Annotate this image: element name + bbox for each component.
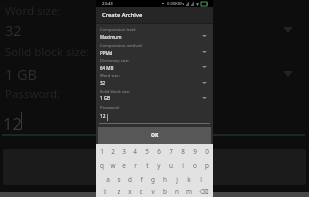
button[interactable]: r bbox=[129, 158, 141, 172]
button[interactable]: 4 bbox=[129, 144, 141, 158]
staticText: Compression method: bbox=[100, 43, 143, 49]
staticText: l bbox=[200, 175, 202, 184]
staticText: r bbox=[134, 161, 137, 170]
button[interactable]: v bbox=[147, 186, 159, 197]
staticText: Solid block size: bbox=[5, 44, 90, 60]
staticText: t bbox=[146, 161, 149, 170]
button[interactable]: m bbox=[183, 186, 195, 197]
staticText: Create Archive bbox=[102, 11, 143, 19]
button[interactable]: q bbox=[96, 158, 107, 172]
staticText: x bbox=[128, 187, 132, 196]
staticText: Compression level: bbox=[100, 27, 137, 33]
staticText: 3 bbox=[122, 147, 126, 156]
button[interactable]: 8 bbox=[177, 144, 189, 158]
button[interactable]: b bbox=[159, 186, 171, 197]
button[interactable]: f bbox=[135, 172, 147, 186]
button[interactable]: u bbox=[165, 158, 177, 172]
button[interactable]: ⇧ bbox=[96, 186, 113, 197]
staticText: 1 GB bbox=[100, 95, 110, 101]
staticText: 12 bbox=[3, 112, 22, 134]
staticText: e bbox=[122, 161, 126, 170]
staticText: OK bbox=[151, 132, 159, 139]
button[interactable]: 3 bbox=[118, 144, 129, 158]
staticText: 64 MB bbox=[100, 65, 114, 71]
staticText: p bbox=[205, 161, 209, 170]
button[interactable]: ⌫ bbox=[195, 186, 213, 197]
button[interactable]: c bbox=[135, 186, 147, 197]
button[interactable]: p bbox=[201, 158, 213, 172]
button[interactable]: 5 bbox=[141, 144, 153, 158]
staticText: d bbox=[128, 175, 132, 184]
staticText: Solid block size: bbox=[100, 89, 131, 95]
staticText: k bbox=[187, 175, 191, 184]
staticText: Dictionary size: bbox=[100, 58, 130, 64]
staticText: n bbox=[175, 187, 179, 196]
staticText: v bbox=[151, 187, 155, 196]
staticText: a bbox=[106, 175, 110, 184]
staticText: j bbox=[176, 175, 178, 184]
button[interactable]: 0 bbox=[201, 144, 213, 158]
button[interactable]: k bbox=[183, 172, 195, 186]
staticText: 0.00KB/s bbox=[167, 1, 185, 7]
button[interactable]: 7 bbox=[165, 144, 177, 158]
staticText: Word size: bbox=[100, 73, 120, 79]
staticText: m bbox=[186, 187, 192, 196]
button[interactable]: s bbox=[113, 172, 124, 186]
staticText: o bbox=[193, 161, 197, 170]
staticText: i bbox=[182, 161, 184, 170]
button[interactable]: l bbox=[195, 172, 207, 186]
staticText: Password: bbox=[100, 105, 120, 111]
staticText: 0 bbox=[205, 147, 209, 156]
button[interactable]: a bbox=[102, 172, 113, 186]
staticText: 9 bbox=[193, 147, 197, 156]
button[interactable]: 6 bbox=[153, 144, 165, 158]
button[interactable]: h bbox=[159, 172, 171, 186]
staticText: 8 bbox=[181, 147, 185, 156]
staticText: 4 bbox=[133, 147, 137, 156]
button[interactable]: e bbox=[118, 158, 129, 172]
staticText: w bbox=[110, 161, 116, 170]
staticText: 32 bbox=[100, 80, 106, 86]
button[interactable]: y bbox=[153, 158, 165, 172]
staticText: s bbox=[117, 175, 121, 184]
staticText: 2 bbox=[111, 147, 115, 156]
staticText: 23:43 bbox=[102, 1, 113, 7]
staticText: q bbox=[100, 161, 104, 170]
staticText: b bbox=[163, 187, 167, 196]
button[interactable]: n bbox=[171, 186, 183, 197]
staticText: Word size: bbox=[5, 3, 61, 19]
staticText: y bbox=[157, 161, 161, 170]
button[interactable]: x bbox=[124, 186, 135, 197]
staticText: 7 bbox=[169, 147, 173, 156]
button[interactable]: 2 bbox=[107, 144, 118, 158]
staticText: 6 bbox=[157, 147, 161, 156]
staticText: ⌫ bbox=[199, 188, 209, 195]
staticText: f bbox=[140, 175, 143, 184]
staticText: ⇧ bbox=[102, 188, 108, 195]
staticText: Password: bbox=[5, 86, 61, 102]
button[interactable]: 9 bbox=[189, 144, 201, 158]
button[interactable]: d bbox=[124, 172, 135, 186]
staticText: z bbox=[117, 187, 121, 196]
button[interactable]: i bbox=[177, 158, 189, 172]
staticText: 1 bbox=[100, 147, 104, 156]
button[interactable]: o bbox=[189, 158, 201, 172]
button[interactable]: z bbox=[113, 186, 124, 197]
button[interactable]: OK bbox=[98, 127, 211, 144]
button[interactable]: 1 bbox=[96, 144, 107, 158]
staticText: 5 bbox=[145, 147, 149, 156]
staticText: u bbox=[169, 161, 173, 170]
staticText: c bbox=[139, 187, 143, 196]
button[interactable]: w bbox=[107, 158, 118, 172]
staticText: 32 bbox=[5, 20, 22, 40]
staticText: h bbox=[163, 175, 167, 184]
staticText: 12 bbox=[100, 113, 106, 120]
button[interactable]: j bbox=[171, 172, 183, 186]
button[interactable]: t bbox=[141, 158, 153, 172]
staticText: Maximum bbox=[100, 34, 122, 40]
button[interactable]: g bbox=[147, 172, 159, 186]
staticText: g bbox=[151, 175, 155, 184]
staticText: 1 GB bbox=[5, 64, 38, 84]
staticText: PPMd bbox=[100, 50, 113, 56]
